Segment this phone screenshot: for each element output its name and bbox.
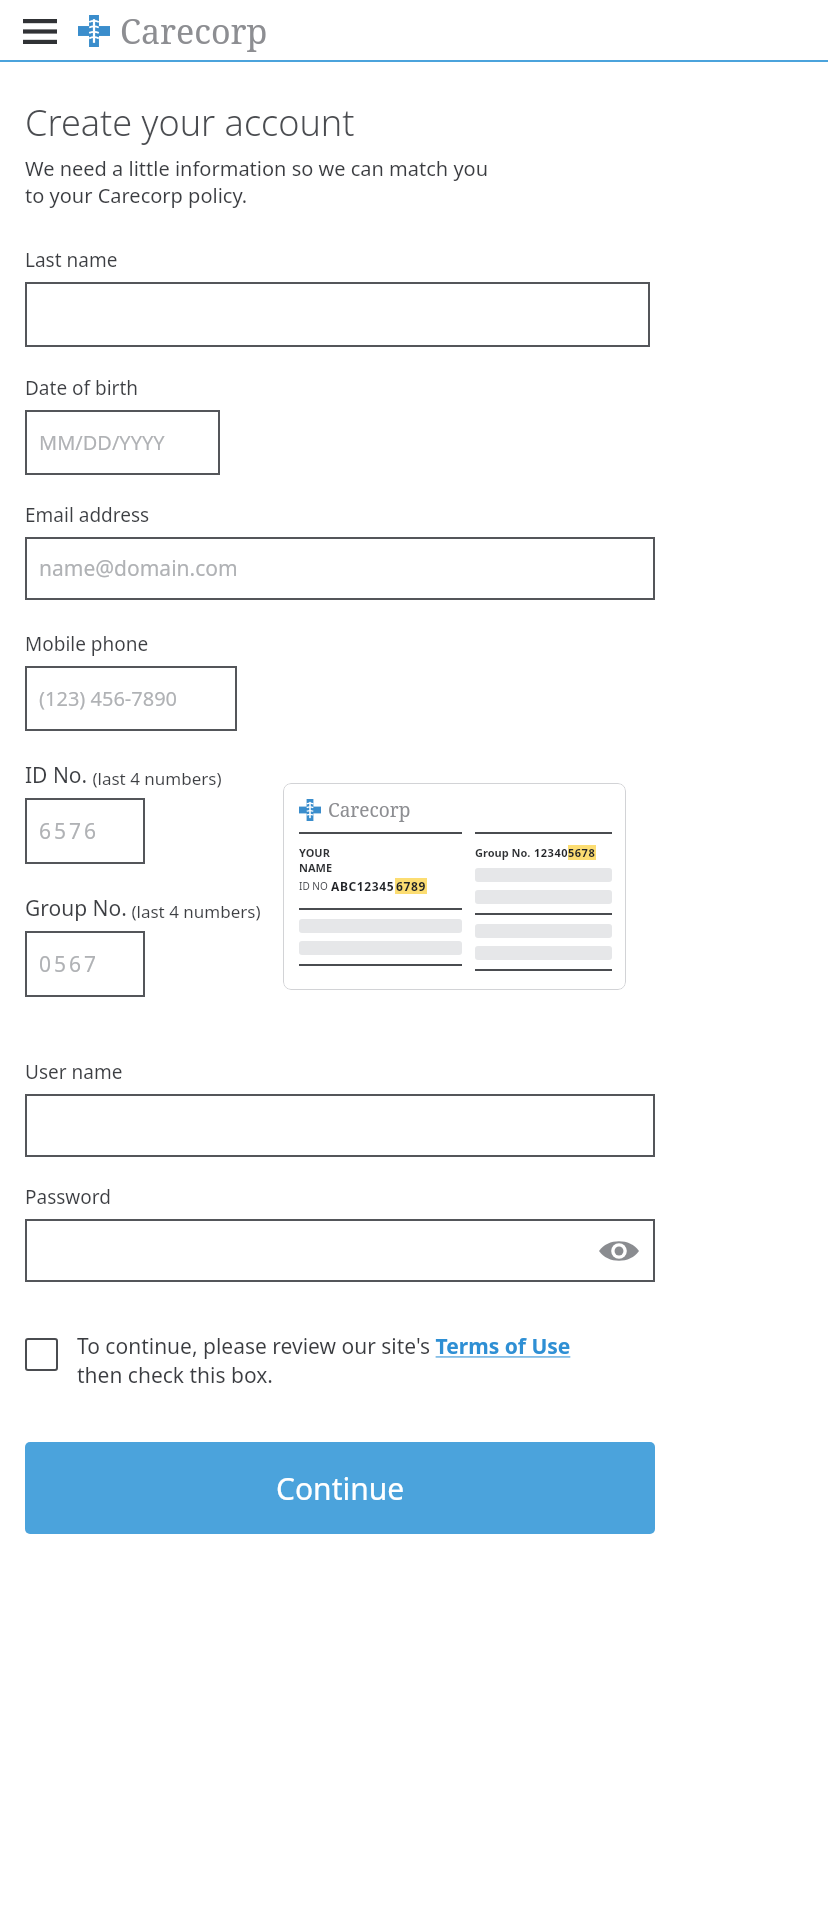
button[interactable]: 6576 [25,798,145,864]
staticText: ABC12345 [331,878,395,894]
button[interactable]: Continue [25,1442,655,1534]
button[interactable]: MM/DD/YYYY [25,410,220,475]
button[interactable]: name@domain.com [25,537,655,600]
staticText: then check this box. [77,1361,273,1390]
staticText: Last name [25,247,118,273]
staticText: Continue [276,1468,405,1509]
button[interactable]: Accept terms checkbox [25,1338,58,1371]
staticText: Create your account [25,98,355,147]
button[interactable]: Show password [25,1219,655,1282]
button[interactable]: 0567 [25,931,145,997]
staticText: ID NO [299,879,331,893]
button[interactable] [25,282,650,347]
button[interactable]: Menu [18,11,62,51]
button[interactable]: To continue, please review our site's Te… [77,1332,571,1361]
staticText: (last 4 numbers) [88,767,222,790]
staticText: ID No. [25,761,88,790]
staticText: Mobile phone [25,631,149,657]
staticText: Carecorp [328,797,411,823]
staticText: Email address [25,502,150,528]
staticText: YOUR [299,845,330,860]
button[interactable]: (123) 456-7890 [25,666,237,731]
staticText: name@domain.com [39,554,238,583]
staticText: NAME [299,860,333,875]
staticText: 12340 [534,845,568,860]
staticText: Group No. [25,894,127,923]
staticText: Carecorp [120,8,268,54]
staticText: 6576 [39,817,100,846]
button[interactable] [25,1094,655,1157]
staticText: 5678 [568,845,596,860]
staticText: MM/DD/YYYY [39,429,165,456]
staticText: 6789 [396,878,426,894]
staticText: (123) 456-7890 [39,685,178,712]
staticText: to your Carecorp policy. [25,182,248,209]
staticText: User name [25,1059,123,1085]
button[interactable]: Show password [597,1229,641,1273]
staticText: (last 4 numbers) [127,900,261,923]
staticText: We need a little information so we can m… [25,155,489,182]
staticText: Date of birth [25,375,139,401]
staticText: Group No. [475,845,534,860]
button[interactable]: Carecorp [78,8,268,54]
staticText: Password [25,1184,111,1210]
staticText: 0567 [39,950,100,979]
